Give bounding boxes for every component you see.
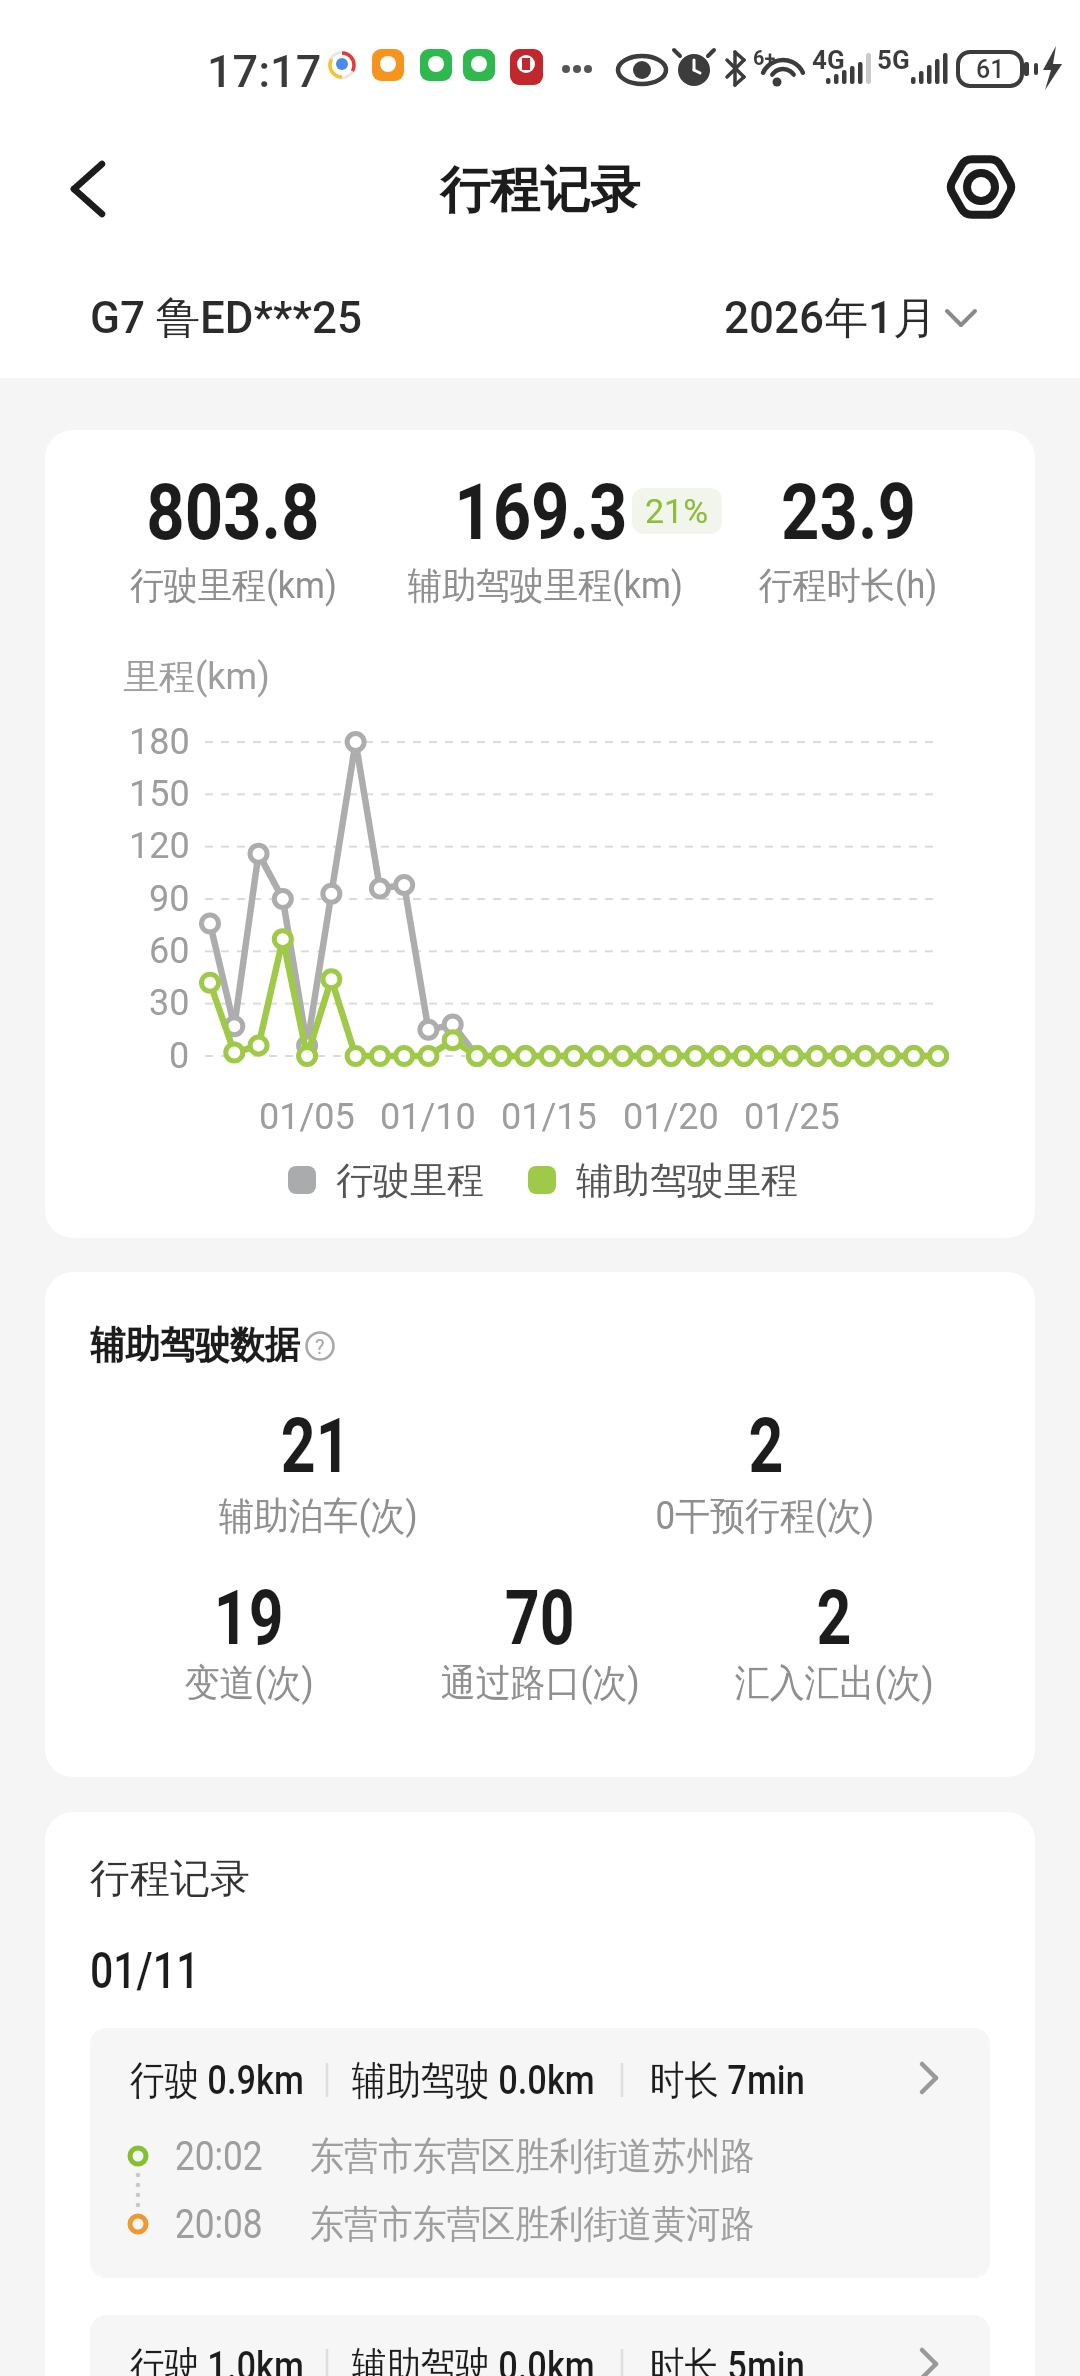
- staticText: 里程(km): [123, 654, 270, 699]
- button[interactable]: [40, 140, 140, 240]
- staticText: 行程记录: [440, 159, 640, 222]
- staticText: 行程时长(h): [759, 562, 937, 609]
- staticText: 01/15: [501, 1096, 597, 1138]
- staticText: 辅助泊车(次): [219, 1492, 418, 1540]
- staticText: 东营市东营区胜利街道黄河路: [310, 2200, 755, 2248]
- staticText: 行驶里程: [336, 1157, 484, 1204]
- staticText: 120: [129, 825, 190, 867]
- staticText: 行驶 1.0km: [130, 2341, 305, 2376]
- staticText: 时长 5min: [650, 2341, 805, 2376]
- staticText: 2026年1月: [724, 291, 938, 346]
- staticText: 通过路口(次): [441, 1659, 640, 1707]
- staticText: 01/10: [380, 1096, 476, 1138]
- button[interactable]: [700, 270, 1000, 366]
- staticText: 01/25: [744, 1096, 840, 1138]
- staticText: 21: [281, 1401, 351, 1490]
- staticText: 17:17: [207, 45, 322, 98]
- staticText: 01/20: [623, 1096, 719, 1138]
- staticText: 21%: [645, 491, 709, 531]
- staticText: 4G: [812, 45, 845, 75]
- staticText: 辅助驾驶里程(km): [408, 562, 683, 609]
- staticText: 时长 7min: [650, 2055, 805, 2105]
- staticText: 150: [129, 773, 190, 815]
- staticText: 行驶 0.9km: [130, 2055, 305, 2105]
- staticText: 辅助驾驶数据: [90, 1321, 300, 1369]
- staticText: 辅助驾驶 0.0km: [352, 2341, 595, 2376]
- staticText: 行驶里程(km): [130, 562, 337, 609]
- staticText: 0干预行程(次): [655, 1492, 874, 1540]
- staticText: 19: [214, 1573, 284, 1662]
- staticText: 30: [149, 982, 190, 1024]
- staticText: 20:02: [175, 2133, 263, 2180]
- staticText: 23.9: [781, 467, 916, 558]
- staticText: 辅助驾驶 0.0km: [352, 2055, 595, 2105]
- staticText: 20:08: [175, 2201, 263, 2248]
- button[interactable]: [90, 2315, 990, 2376]
- staticText: 70: [505, 1573, 575, 1662]
- staticText: 变道(次): [185, 1659, 314, 1707]
- staticText: 180: [129, 721, 190, 763]
- staticText: 2: [748, 1401, 784, 1490]
- staticText: 汇入汇出(次): [735, 1659, 934, 1707]
- staticText: 803.8: [146, 467, 320, 558]
- staticText: 169.3: [454, 467, 628, 558]
- staticText: ?: [315, 1335, 325, 1358]
- button[interactable]: [90, 2028, 990, 2278]
- staticText: 辅助驾驶里程: [576, 1157, 798, 1204]
- staticText: 2: [816, 1573, 852, 1662]
- staticText: 行程记录: [90, 1853, 250, 1903]
- staticText: 90: [149, 878, 190, 920]
- staticText: 01/05: [259, 1096, 355, 1138]
- staticText: 0: [169, 1035, 190, 1077]
- staticText: 东营市东营区胜利街道苏州路: [310, 2132, 755, 2180]
- button[interactable]: [935, 143, 1027, 233]
- staticText: 60: [149, 930, 190, 972]
- staticText: G7 鲁ED***25: [90, 291, 362, 346]
- staticText: 01/11: [90, 1942, 200, 2001]
- staticText: 61: [976, 55, 1005, 84]
- staticText: 6+: [753, 46, 776, 69]
- staticText: 5G: [877, 45, 910, 75]
